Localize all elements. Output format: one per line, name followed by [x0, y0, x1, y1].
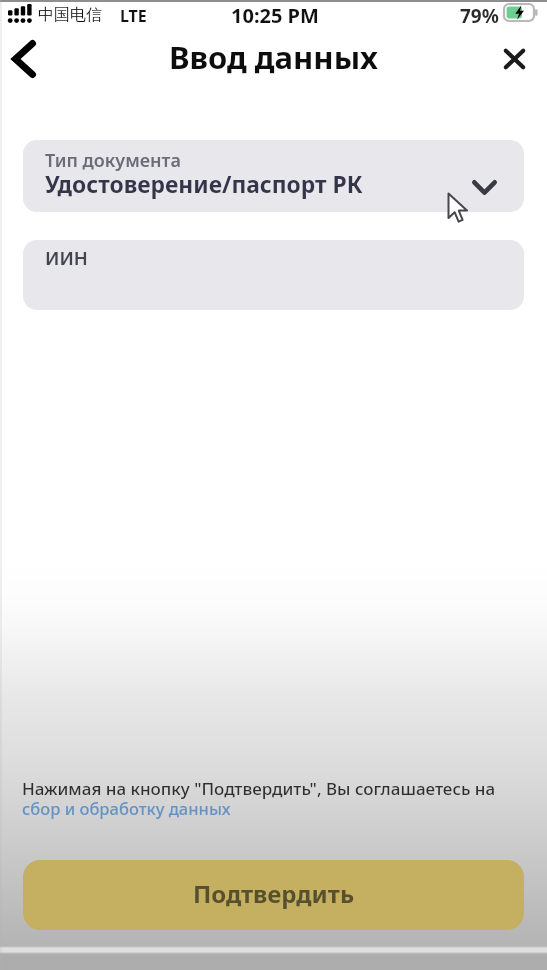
staticText: Подтвердить	[193, 877, 355, 910]
button[interactable]: Тип документа	[23, 140, 524, 212]
staticText: 79%	[460, 3, 499, 29]
staticText: Тип документа	[45, 148, 181, 173]
staticText: LTE	[120, 5, 147, 27]
staticText: 中国电信	[38, 5, 102, 25]
staticText: ИИН	[45, 245, 88, 270]
staticText: Удостоверение/паспорт РК	[45, 169, 363, 200]
staticText: 10:25 PM	[231, 2, 319, 29]
button[interactable]: Подтвердить	[23, 860, 524, 930]
button[interactable]: сбор и обработку данных	[22, 797, 231, 819]
staticText: сбор и обработку данных	[22, 797, 231, 819]
button[interactable]: Back	[0, 36, 48, 82]
button[interactable]: ИИН	[23, 240, 524, 310]
button[interactable]: Close	[491, 36, 537, 82]
staticText: Ввод данных	[169, 36, 379, 78]
staticText: Нажимая на кнопку "Подтвердить", Вы согл…	[22, 777, 496, 800]
